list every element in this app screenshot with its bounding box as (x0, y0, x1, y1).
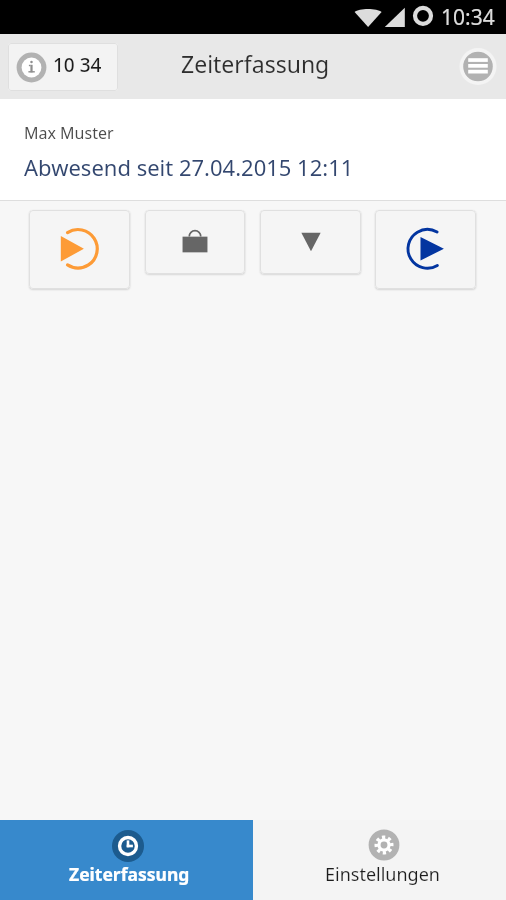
button[interactable]: Mehr (260, 210, 361, 274)
button[interactable]: Zeiterfassung (0, 820, 253, 900)
staticText: Zeiterfassung (181, 48, 330, 79)
button[interactable]: Dienstgang (145, 210, 245, 274)
staticText: Einstellungen (325, 862, 440, 887)
button[interactable]: Fortsetzen (375, 210, 476, 289)
button[interactable]: 10 34 (8, 43, 118, 91)
button[interactable]: Einstellungen (253, 820, 506, 900)
staticText: Max Muster (24, 122, 114, 144)
button[interactable]: Start (29, 210, 130, 289)
staticText: 10 34 (53, 52, 102, 78)
button[interactable]: Menu (458, 47, 498, 87)
staticText: 10:34 (441, 3, 495, 32)
staticText: Zeiterfassung (69, 862, 190, 886)
staticText: Abwesend seit 27.04.2015 12:11 (24, 152, 354, 182)
